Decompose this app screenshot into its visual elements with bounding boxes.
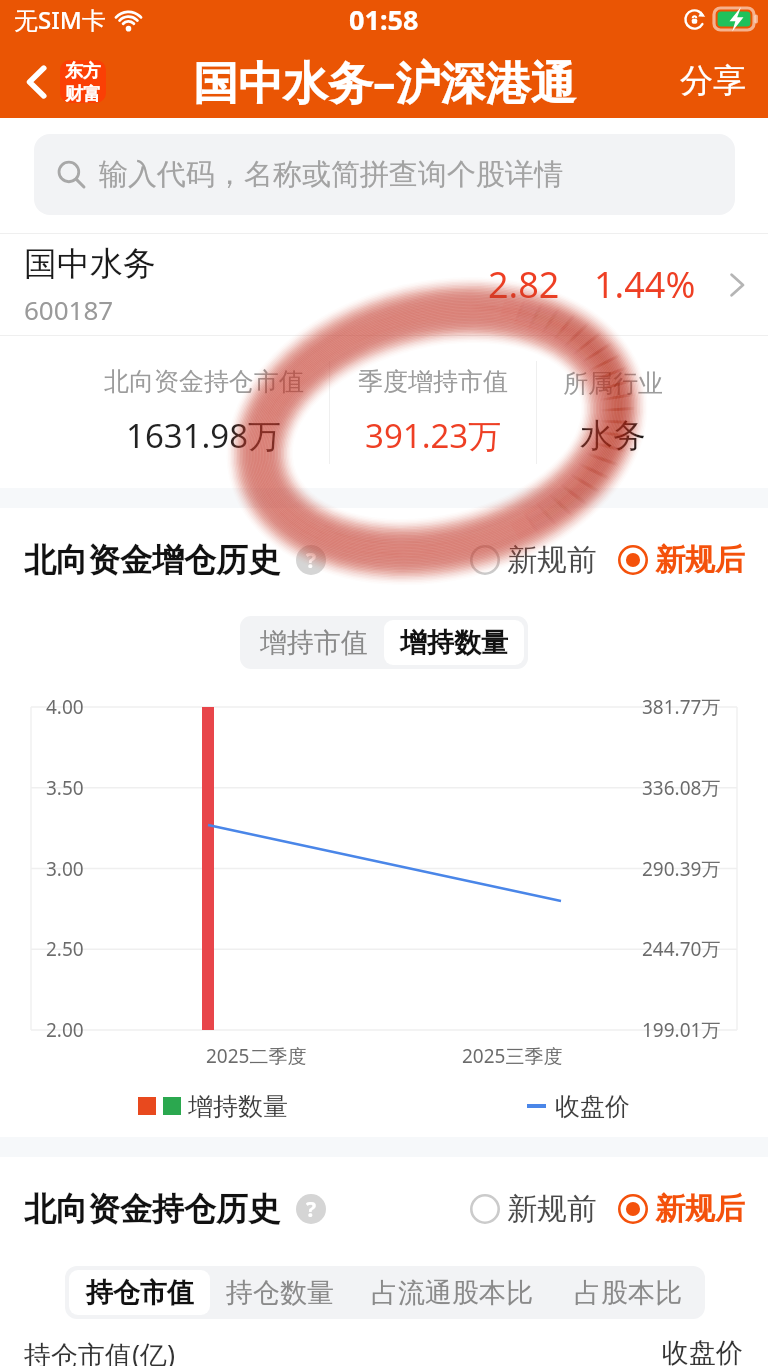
button[interactable]: 持仓市值 <box>69 1270 210 1315</box>
staticText: 2025三季度 <box>462 1043 563 1069</box>
staticText: 季度增持市值 <box>358 366 508 397</box>
button[interactable]: 新规后 <box>618 535 745 585</box>
staticText: 1.44% <box>594 260 696 309</box>
button[interactable]: 增持市值 <box>244 620 384 665</box>
staticText: 3.00 <box>46 856 84 882</box>
staticText: 国中水务 <box>24 243 156 285</box>
staticText: 新规后 <box>655 1190 745 1228</box>
staticText: 增持数量 <box>400 626 508 660</box>
button[interactable]: 新规前 <box>470 1184 597 1234</box>
staticText: 2025二季度 <box>206 1043 307 1069</box>
staticText: 占股本比 <box>574 1276 682 1310</box>
staticText: ? <box>306 1195 317 1224</box>
staticText: 东方 <box>65 60 101 83</box>
staticText: 无SIM卡 <box>14 3 106 36</box>
staticText: 增持数量 <box>188 1091 288 1122</box>
staticText: 持仓市值(亿) <box>24 1336 176 1366</box>
button[interactable]: 持仓数量 <box>210 1270 350 1315</box>
staticText: 北向资金增仓历史 <box>24 540 280 580</box>
staticText: ? <box>306 546 317 575</box>
staticText: 输入代码，名称或简拼查询个股详情 <box>99 156 563 193</box>
staticText: 01:58 <box>349 1 419 38</box>
staticText: 290.39万 <box>642 856 721 882</box>
staticText: 4.00 <box>46 694 84 720</box>
staticText: 新规前 <box>507 1190 597 1228</box>
button[interactable]: 占流通股本比 <box>350 1270 554 1315</box>
staticText: 244.70万 <box>642 936 721 962</box>
staticText: 分享 <box>680 60 746 102</box>
staticText: 391.23万 <box>365 413 502 458</box>
staticText: 占流通股本比 <box>371 1276 533 1310</box>
other: Battery charging <box>714 8 759 30</box>
staticText: 2.00 <box>46 1017 84 1043</box>
button[interactable]: Help <box>296 545 326 575</box>
staticText: 2.50 <box>46 936 84 962</box>
staticText: 1631.98万 <box>126 413 282 458</box>
staticText: 新规前 <box>507 541 597 579</box>
staticText: 增持市值 <box>260 626 368 660</box>
button[interactable]: 国中水务 <box>0 234 768 335</box>
button[interactable]: Help <box>296 1194 326 1224</box>
button[interactable]: East Money <box>60 60 106 103</box>
staticText: 持仓数量 <box>226 1276 334 1310</box>
button[interactable]: 新规后 <box>618 1184 745 1234</box>
staticText: 收盘价 <box>555 1091 630 1122</box>
button[interactable]: 输入代码，名称或简拼查询个股详情 <box>34 134 735 215</box>
staticText: 381.77万 <box>642 694 721 720</box>
staticText: 2.82 <box>488 260 560 309</box>
button[interactable]: 分享 <box>658 48 768 114</box>
staticText: 国中水务–沪深港通 <box>193 51 576 112</box>
button[interactable]: 增持数量 <box>384 620 524 665</box>
staticText: 3.50 <box>46 775 84 801</box>
staticText: 收盘价 <box>662 1336 743 1366</box>
staticText: 新规后 <box>655 541 745 579</box>
staticText: 财富 <box>65 83 101 103</box>
staticText: 北向资金持仓历史 <box>24 1189 280 1229</box>
staticText: 600187 <box>24 292 114 327</box>
staticText: 水务 <box>580 415 646 457</box>
staticText: 所属行业 <box>563 368 663 399</box>
other: Rotation lock <box>684 9 705 30</box>
button[interactable]: 新规前 <box>470 535 597 585</box>
staticText: 336.08万 <box>642 775 721 801</box>
staticText: 199.01万 <box>642 1017 721 1043</box>
button[interactable]: 占股本比 <box>554 1270 701 1315</box>
staticText: 北向资金持仓市值 <box>104 366 304 397</box>
button[interactable]: Back <box>18 63 56 101</box>
staticText: 持仓市值 <box>86 1276 194 1310</box>
